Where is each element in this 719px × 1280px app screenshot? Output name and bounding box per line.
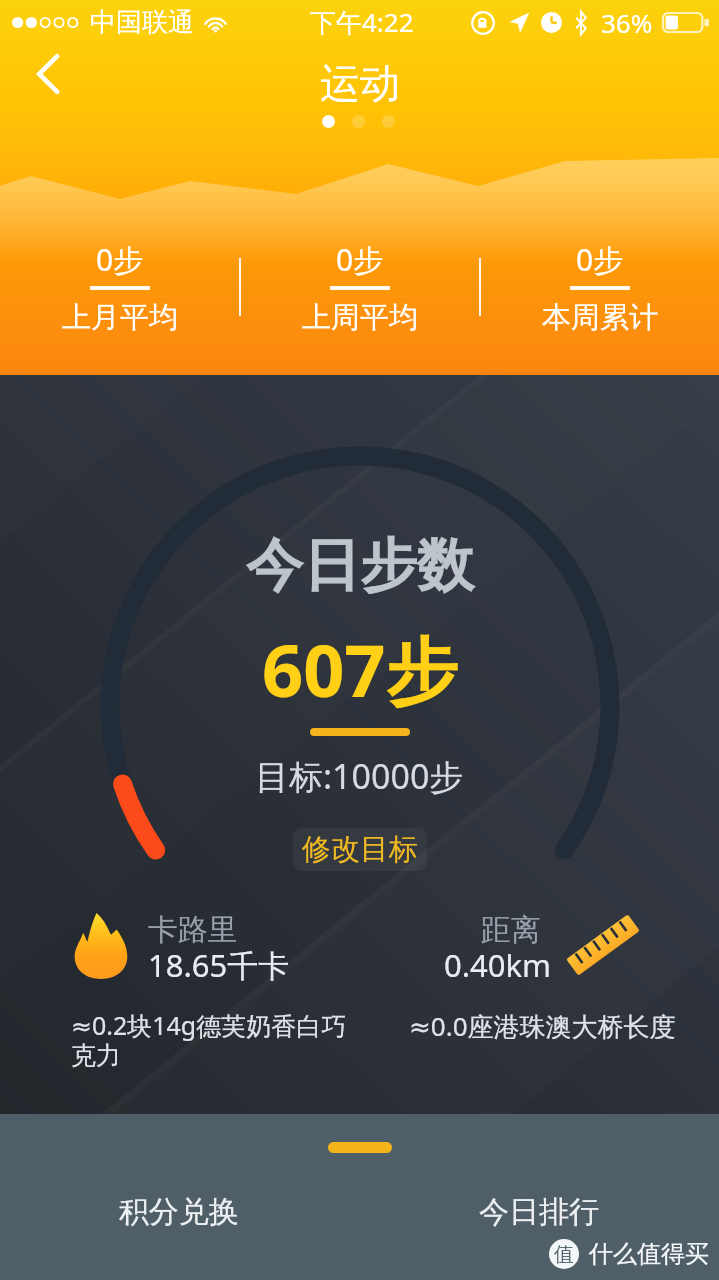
staticText: 0.40km: [444, 944, 552, 986]
staticText: 0步: [336, 239, 384, 280]
button[interactable]: Back: [20, 46, 76, 102]
staticText: 修改目标: [302, 831, 418, 868]
staticText: 36%: [601, 5, 653, 40]
staticText: 下午4:22: [310, 4, 414, 40]
staticText: 今日排行: [479, 1193, 599, 1231]
staticText: 卡路里: [148, 911, 238, 949]
button[interactable]: 0步: [481, 239, 719, 336]
staticText: 距离: [481, 911, 541, 949]
button[interactable]: 0步: [241, 239, 479, 336]
staticText: 0步: [96, 239, 144, 280]
staticText: 运动: [320, 58, 400, 108]
staticText: 积分兑换: [119, 1193, 239, 1231]
staticText: 上月平均: [62, 299, 178, 336]
button[interactable]: 积分兑换: [59, 1177, 299, 1247]
staticText: 0步: [576, 239, 624, 280]
staticText: 今日步数: [246, 530, 474, 602]
staticText: 目标:10000步: [255, 753, 464, 799]
staticText: 中国联通: [90, 6, 194, 39]
staticText: ≈0.2块14g德芙奶香白巧克力: [71, 1008, 363, 1071]
staticText: 18.65千卡: [148, 944, 290, 986]
staticText: 上周平均: [302, 299, 418, 336]
staticText: 本周累计: [542, 299, 658, 336]
button[interactable]: 修改目标: [293, 828, 427, 871]
staticText: 什么值得买: [589, 1239, 709, 1269]
staticText: 值: [554, 1242, 574, 1267]
button[interactable]: 今日排行: [419, 1177, 659, 1247]
button[interactable]: 0步: [0, 239, 239, 336]
staticText: 607步: [262, 620, 458, 718]
staticText: ≈0.0座港珠澳大桥长度: [409, 1008, 676, 1044]
